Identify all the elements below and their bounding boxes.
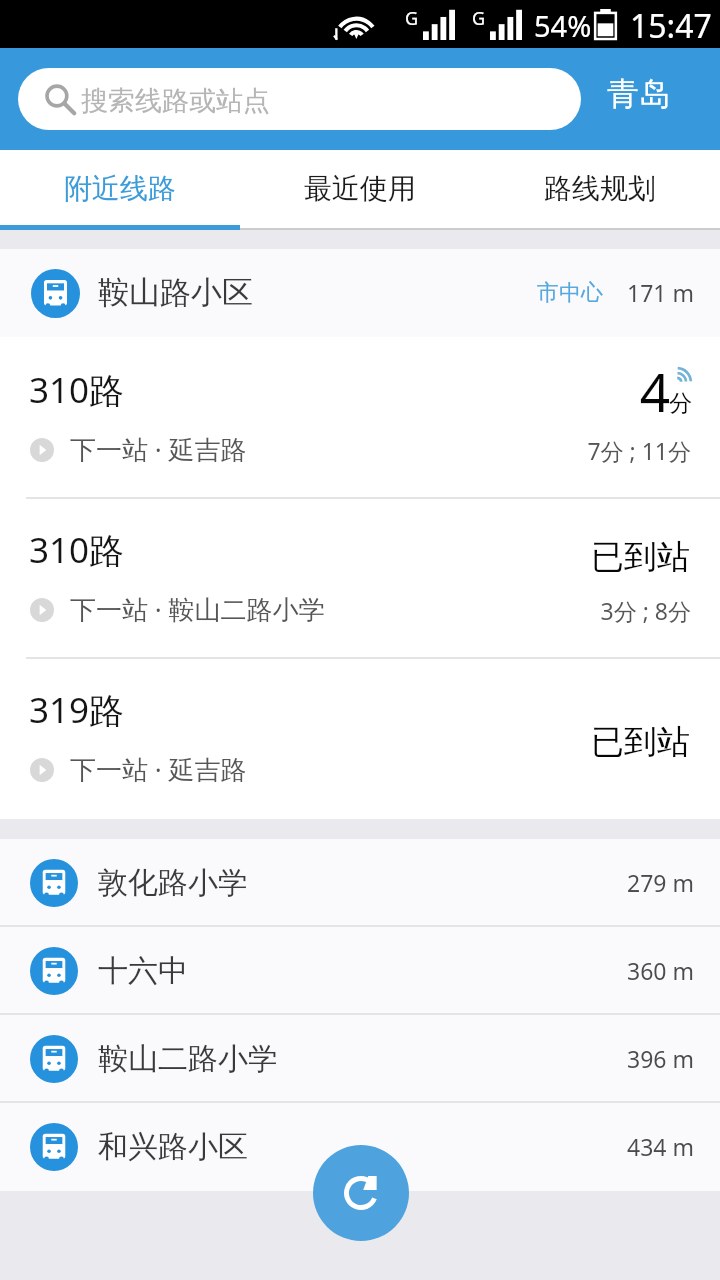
button[interactable]: 319路	[0, 659, 720, 819]
button[interactable]: Refresh	[313, 1145, 409, 1241]
staticText: 鞍山二路小学	[98, 1040, 278, 1078]
button[interactable]: 最近使用	[240, 150, 480, 230]
staticText: 54%	[534, 6, 592, 45]
staticText: 分	[669, 389, 692, 418]
staticText: 7分 ; 11分	[441, 435, 691, 466]
staticText: 敦化路小学	[98, 864, 248, 902]
staticText: 360 m	[627, 955, 694, 986]
staticText: 下一站 · 延吉路	[70, 431, 247, 467]
button[interactable]: 附近线路	[0, 150, 240, 230]
staticText: 最近使用	[304, 171, 416, 206]
button[interactable]: 十六中	[0, 927, 720, 1015]
button[interactable]: 鞍山二路小学	[0, 1015, 720, 1103]
button[interactable]: 鞍山路小区	[0, 249, 720, 337]
staticText: 十六中	[98, 952, 188, 990]
button[interactable]: 敦化路小学	[0, 839, 720, 927]
staticText: 路线规划	[544, 171, 656, 206]
button[interactable]: 搜索线路或站点	[18, 68, 581, 130]
staticText: 青岛	[607, 74, 671, 114]
staticText: 市中心	[537, 279, 603, 307]
staticText: G	[405, 6, 419, 31]
staticText: 171 m	[627, 277, 694, 308]
staticText: 搜索线路或站点	[81, 84, 270, 118]
staticText: 310路	[29, 526, 125, 574]
staticText: 鞍山路小区	[98, 273, 253, 312]
staticText: 下一站 · 鞍山二路小学	[70, 591, 325, 627]
button[interactable]: 路线规划	[480, 150, 720, 230]
staticText: 已到站	[440, 721, 690, 763]
staticText: 4	[625, 355, 670, 427]
button[interactable]: 310路	[0, 337, 720, 499]
staticText: 396 m	[627, 1043, 694, 1074]
staticText: 310路	[29, 366, 125, 414]
staticText: 15:47	[630, 4, 712, 48]
button[interactable]: 310路	[0, 499, 720, 659]
staticText: 下一站 · 延吉路	[70, 751, 247, 787]
staticText: 279 m	[627, 867, 694, 898]
button[interactable]: 青岛	[595, 64, 683, 124]
button[interactable]: 和兴路小区	[0, 1103, 720, 1191]
staticText: 319路	[29, 686, 125, 734]
staticText: 已到站	[440, 536, 690, 578]
staticText: 和兴路小区	[98, 1128, 248, 1166]
staticText: 附近线路	[64, 171, 176, 206]
staticText: 434 m	[627, 1131, 694, 1162]
staticText: G	[472, 6, 486, 31]
staticText: 3分 ; 8分	[441, 595, 691, 626]
